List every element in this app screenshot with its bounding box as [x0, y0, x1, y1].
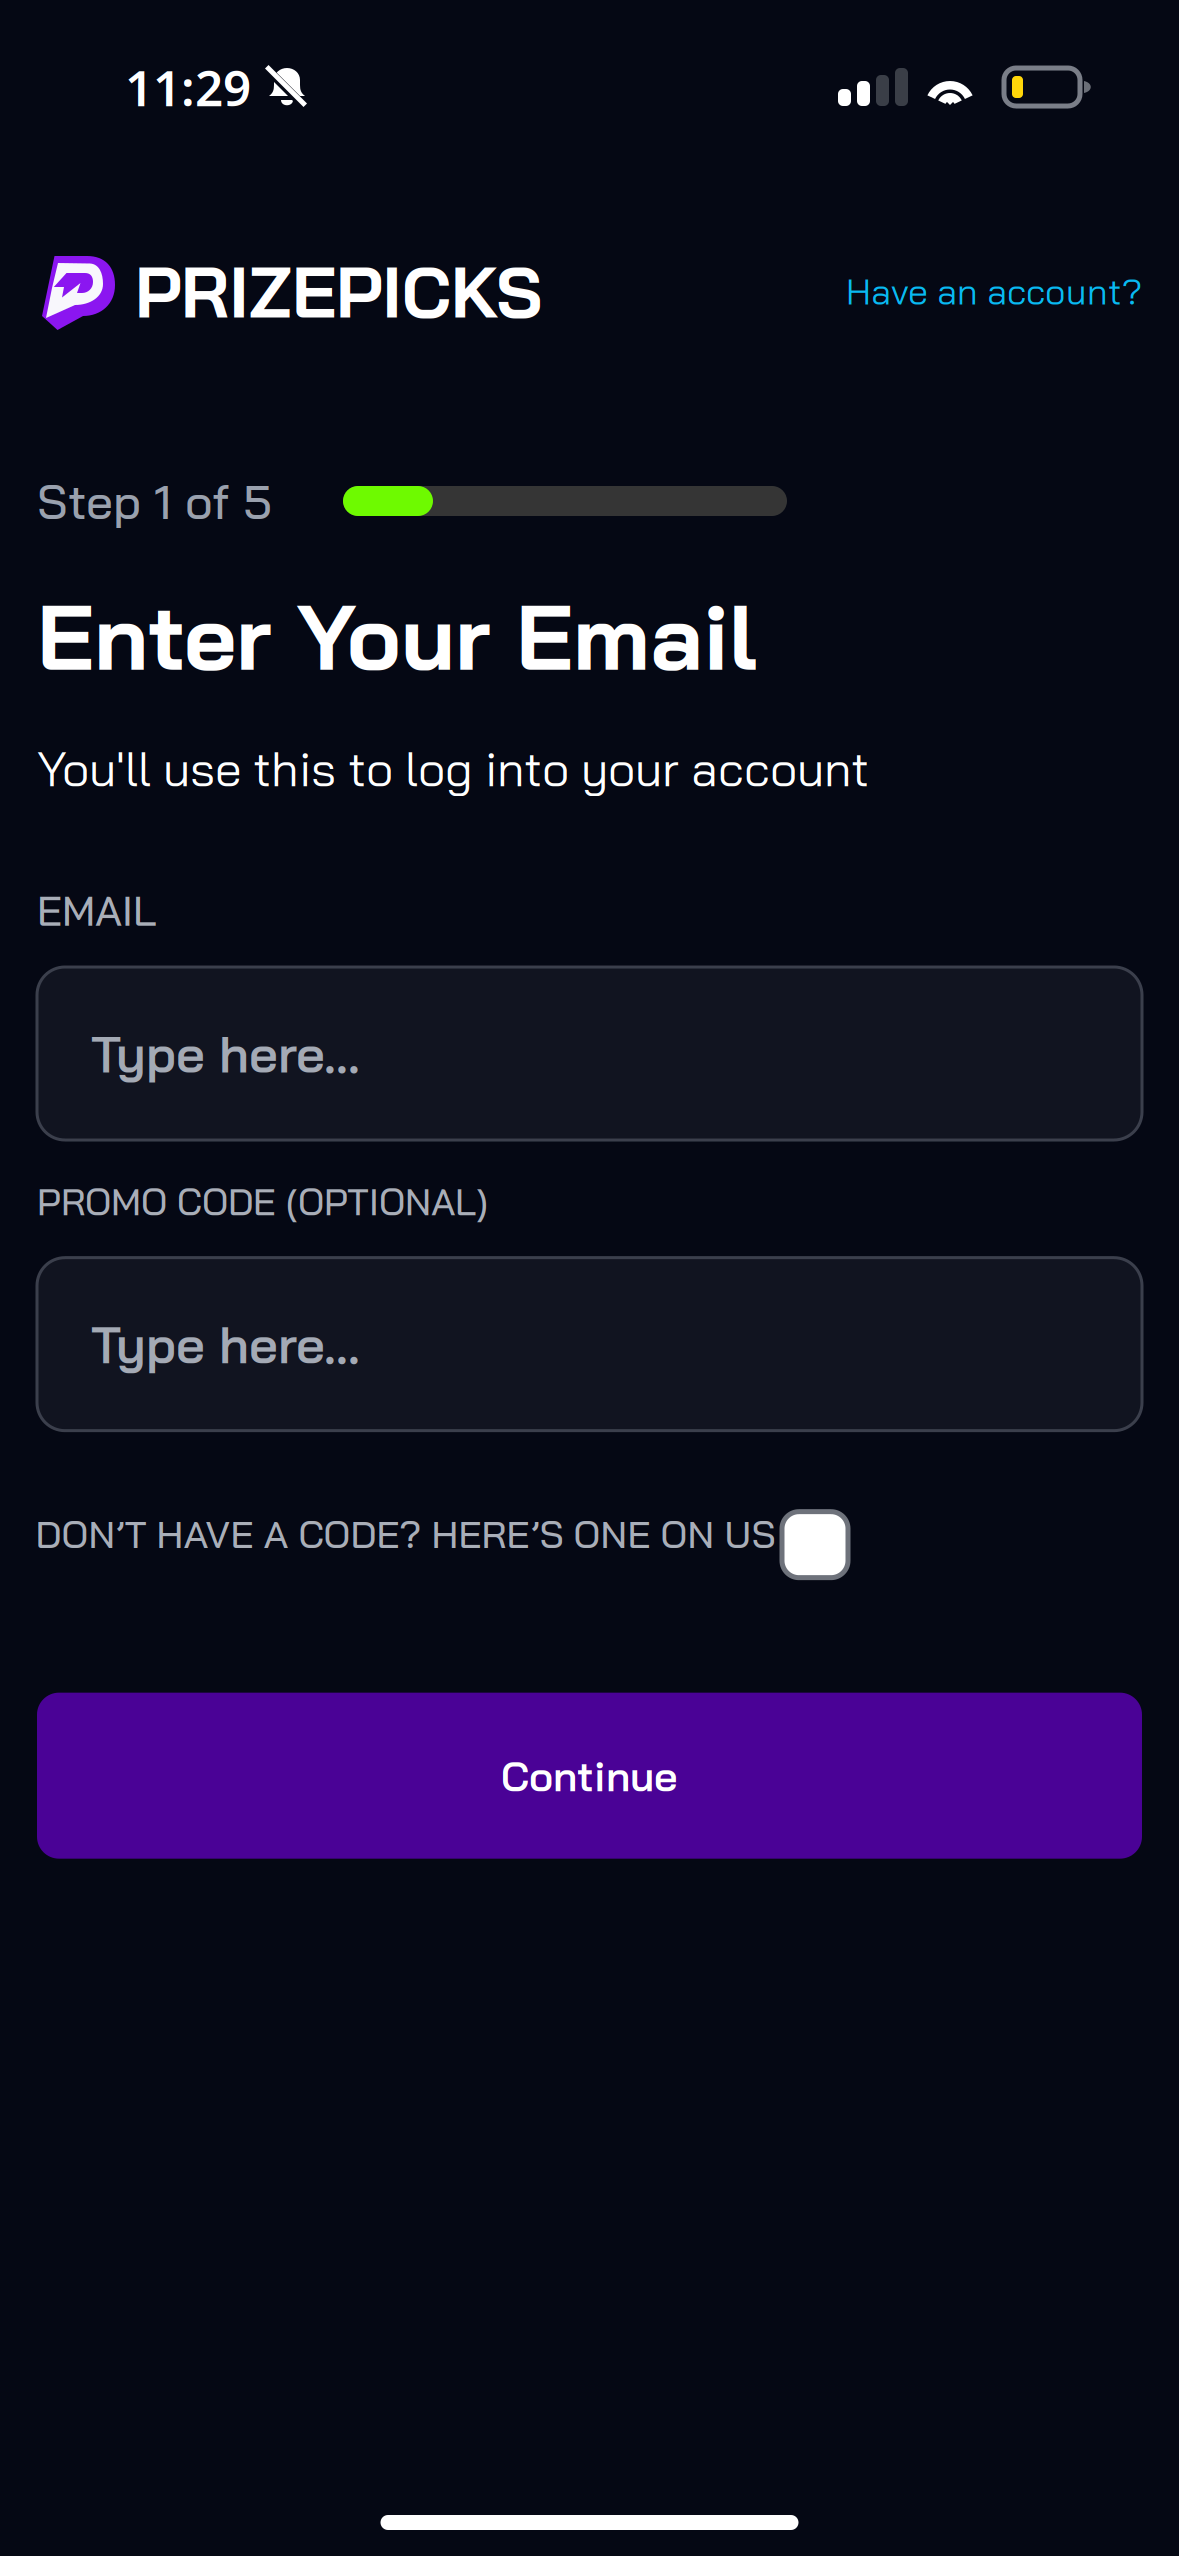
- staticText: DON’T HAVE A CODE? HERE’S ONE ON US: [35, 1510, 775, 1557]
- staticText: Type here...: [91, 1312, 360, 1376]
- staticText: 11:29: [125, 54, 251, 120]
- button[interactable]: Get a promo code: [782, 1512, 848, 1578]
- staticText: EMAIL: [37, 884, 157, 936]
- staticText: PRIZEPICKS: [135, 247, 542, 335]
- button[interactable]: Type here...: [37, 1258, 1142, 1431]
- button[interactable]: Continue: [37, 1693, 1142, 1859]
- button[interactable]: Have an account?: [846, 268, 1142, 313]
- staticText: Type here...: [91, 1022, 360, 1085]
- staticText: Continue: [501, 1750, 678, 1801]
- staticText: You'll use this to log into your account: [37, 738, 869, 798]
- staticText: Step 1 of 5: [37, 471, 272, 531]
- staticText: Enter Your Email: [37, 579, 756, 692]
- staticText: PROMO CODE (OPTIONAL): [37, 1178, 488, 1225]
- button[interactable]: Type here...: [37, 967, 1142, 1140]
- staticText: Have an account?: [846, 268, 1142, 313]
